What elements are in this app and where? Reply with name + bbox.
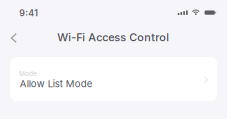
staticText: Wi-Fi Access Control bbox=[57, 31, 169, 44]
staticText: Allow List Mode bbox=[20, 78, 93, 90]
button[interactable]: Mode, Allow List Mode bbox=[10, 57, 217, 101]
staticText: Mode bbox=[19, 69, 37, 77]
staticText: 9:41 bbox=[19, 8, 38, 18]
button[interactable]: Back bbox=[1, 25, 27, 51]
